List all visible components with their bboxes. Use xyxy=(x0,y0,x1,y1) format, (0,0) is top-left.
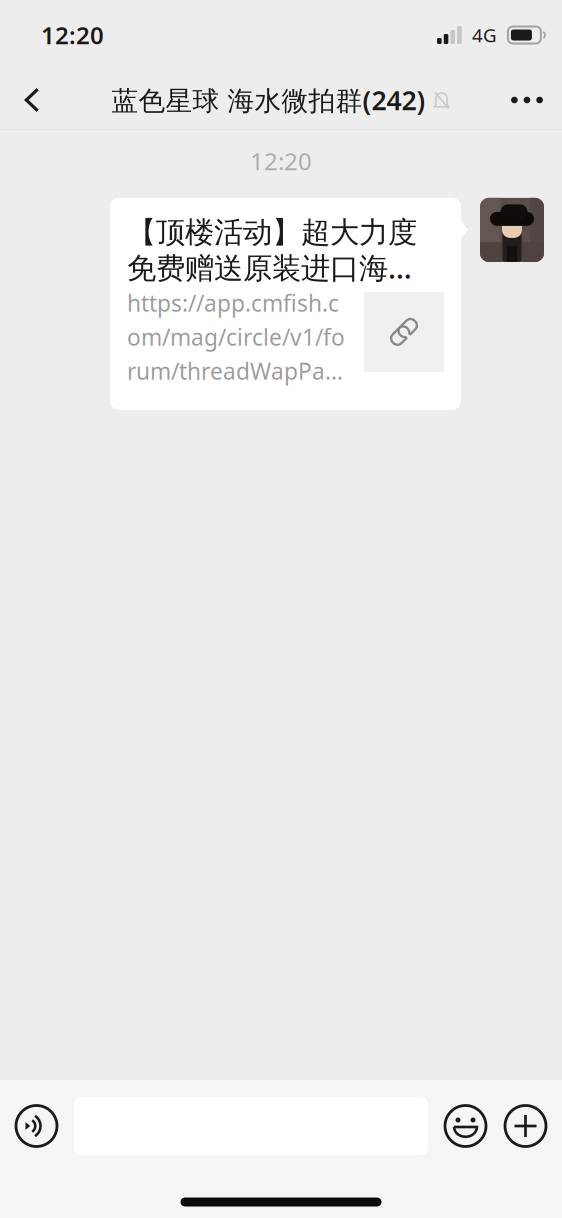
button[interactable]: More xyxy=(498,70,556,130)
button[interactable]: Emoji xyxy=(445,1105,486,1146)
staticText: rum/threadWapPa… xyxy=(127,356,343,386)
staticText: 12:20 xyxy=(41,19,104,51)
button[interactable]: Back xyxy=(3,70,61,130)
button[interactable]: Avatar xyxy=(480,198,544,410)
button[interactable]: Voice message xyxy=(16,1105,57,1146)
button[interactable]: More options xyxy=(505,1105,546,1146)
staticText: https://app.cmfish.c xyxy=(127,288,339,318)
button[interactable]: 【顶楼活动】超大力度 xyxy=(110,198,461,410)
staticText: om/mag/circle/v1/fo xyxy=(127,322,345,352)
staticText: 【顶楼活动】超大力度 xyxy=(127,214,417,250)
staticText: 免费赠送原装进口海… xyxy=(127,248,412,287)
staticText: 4G xyxy=(472,23,497,47)
staticText: 12:20 xyxy=(250,145,312,177)
staticText: 蓝色星球 海水微拍群(242) xyxy=(111,82,425,118)
